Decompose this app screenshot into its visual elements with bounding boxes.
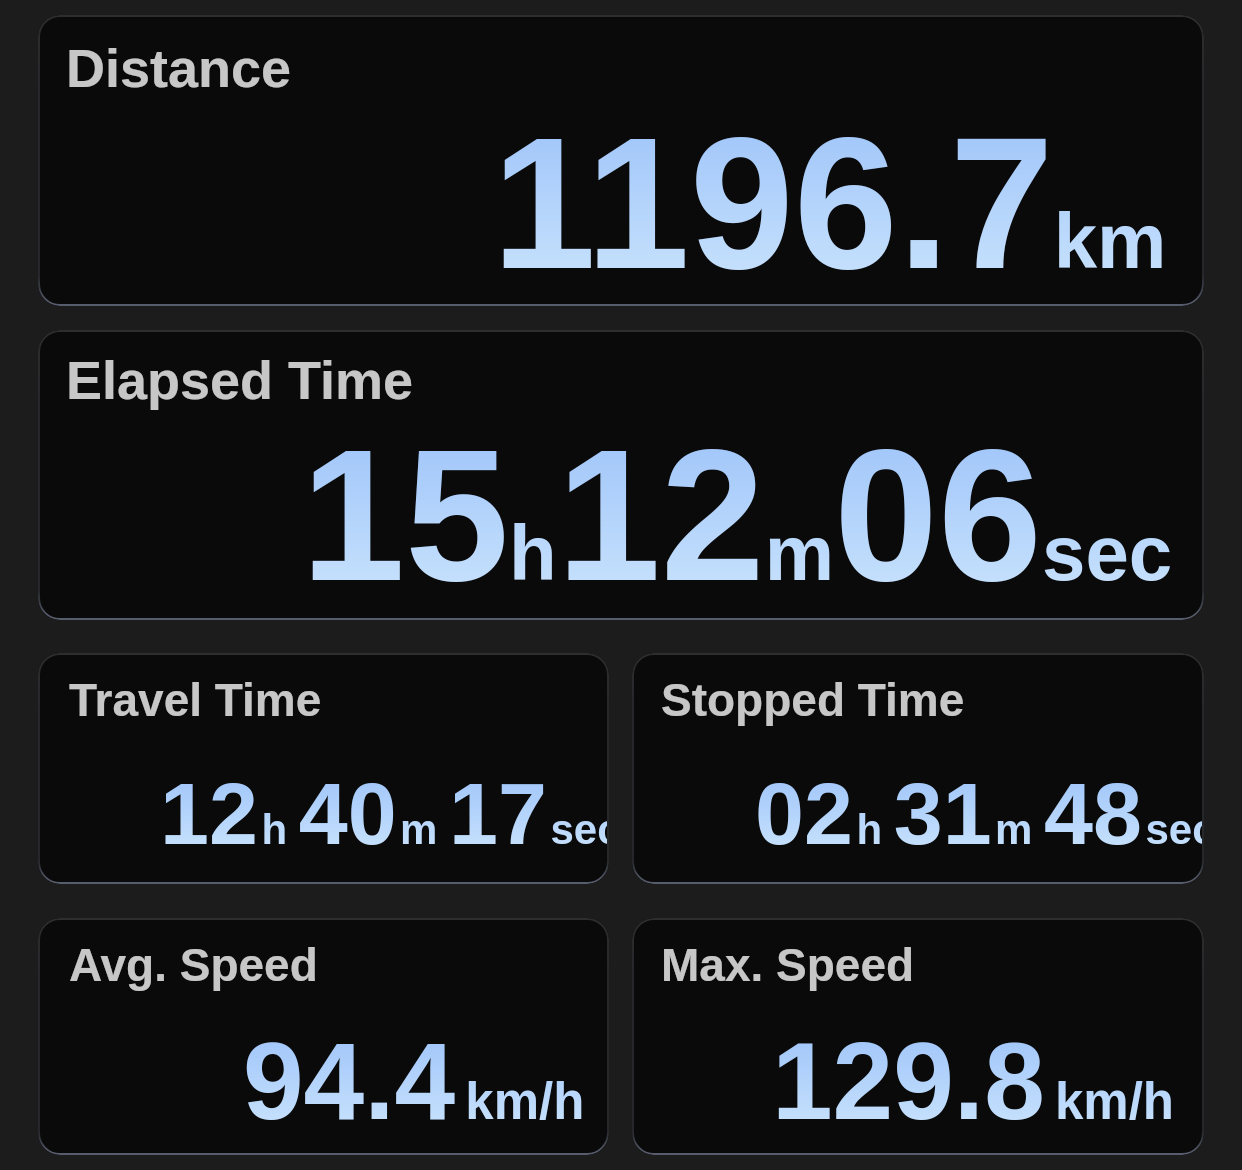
staticText: 129.8 km/h [772, 1020, 1175, 1142]
staticText: 02 h 31 m 48 sec [755, 764, 1204, 862]
staticText: Travel Time [69, 674, 322, 725]
staticText: 1196.7km [492, 99, 1167, 306]
staticText: Avg. Speed [69, 939, 318, 990]
button[interactable]: Distance [38, 15, 1204, 306]
staticText: 94.4 km/h [243, 1020, 585, 1142]
staticText: Elapsed Time [66, 350, 414, 410]
staticText: 12 h 40 m 17 sec [160, 764, 609, 862]
button[interactable]: Avg. Speed [38, 918, 609, 1155]
button[interactable]: Max. Speed [632, 918, 1204, 1155]
button[interactable]: Travel Time [38, 653, 609, 884]
button[interactable]: Elapsed Time [38, 330, 1204, 620]
staticText: Stopped Time [661, 674, 965, 725]
staticText: 15h12m06sec [301, 411, 1173, 620]
staticText: Distance [66, 38, 292, 98]
staticText: Max. Speed [661, 939, 915, 990]
button[interactable]: Stopped Time [632, 653, 1204, 884]
